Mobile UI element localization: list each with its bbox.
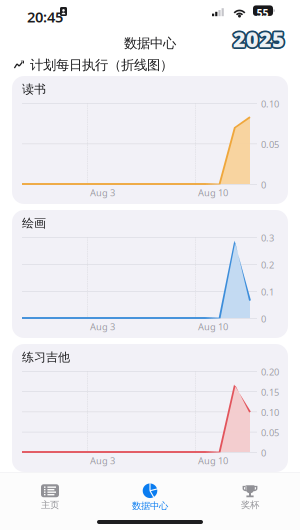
staticText: 2025 [233,23,285,51]
staticText: 0.10 [261,98,279,110]
staticText: 2025 [232,24,284,52]
button[interactable]: 奖杯 [200,485,300,510]
staticText: 数据中心 [124,35,176,51]
staticText: 0.1 [261,286,274,298]
staticText: 练习吉他 [22,350,70,365]
staticText: 55 [256,6,268,20]
staticText: Aug 3 [90,454,115,467]
staticText: Aug 10 [198,454,228,467]
staticText: 2025 [233,26,285,55]
button[interactable]: 数据中心 [100,485,200,510]
staticText: 0.15 [261,386,279,398]
staticText: Aug 3 [90,320,115,333]
staticText: 主页 [41,499,59,511]
staticText: 绘画 [22,216,46,231]
staticText: 0 [261,313,266,325]
staticText: 奖杯 [241,499,259,511]
staticText: 0.05 [261,138,279,150]
staticText: Aug 10 [198,186,228,199]
staticText: 0.05 [261,426,279,439]
staticText: 2025 [232,26,284,54]
staticText: 0.3 [261,232,274,244]
staticText: 数据中心 [132,500,168,512]
staticText: 0 [261,447,266,459]
staticText: 2025 [233,25,285,53]
staticText: Aug 10 [198,320,228,333]
staticText: 0.2 [261,259,274,271]
staticText: 2025 [234,26,286,54]
staticText: 20:45 [27,7,63,26]
staticText: 计划每日执行（折线图） [30,57,173,73]
staticText: 2025 [234,24,286,52]
staticText: Aug 3 [90,186,115,199]
staticText: 0.10 [261,406,279,418]
staticText: 0 [261,179,266,191]
staticText: 2025 [235,25,287,53]
button[interactable]: 主页 [0,485,100,510]
staticText: 0.20 [261,366,279,378]
staticText: 读书 [22,82,46,97]
staticText: 2025 [231,25,283,53]
